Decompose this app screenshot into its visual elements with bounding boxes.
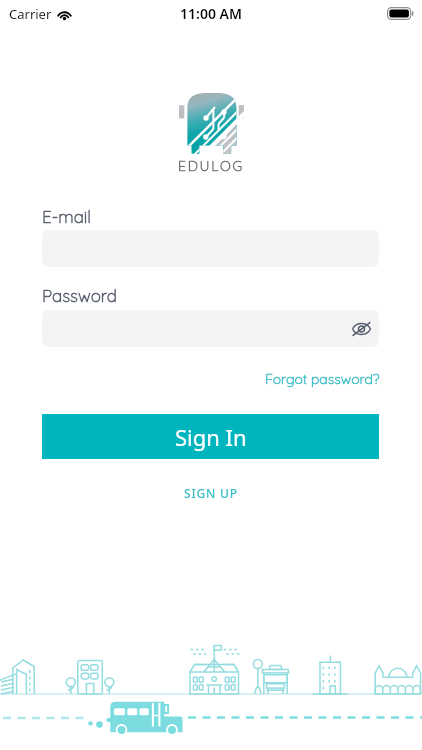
staticText: Forgot password?: [265, 370, 380, 388]
staticText: Carrier: [9, 5, 52, 23]
button[interactable]: Sign In: [42, 414, 379, 459]
button[interactable]: SIGN UP: [184, 485, 238, 501]
staticText: E-mail: [42, 206, 92, 227]
staticText: Password: [42, 285, 117, 306]
button[interactable]: Show password: [42, 310, 379, 347]
staticText: Sign In: [175, 422, 247, 452]
staticText: EDULOG: [178, 157, 244, 175]
button[interactable]: Show password: [347, 315, 375, 343]
staticText: 11:00 AM: [180, 4, 242, 23]
button[interactable]: Forgot password?: [265, 370, 380, 388]
staticText: SIGN UP: [184, 485, 238, 501]
